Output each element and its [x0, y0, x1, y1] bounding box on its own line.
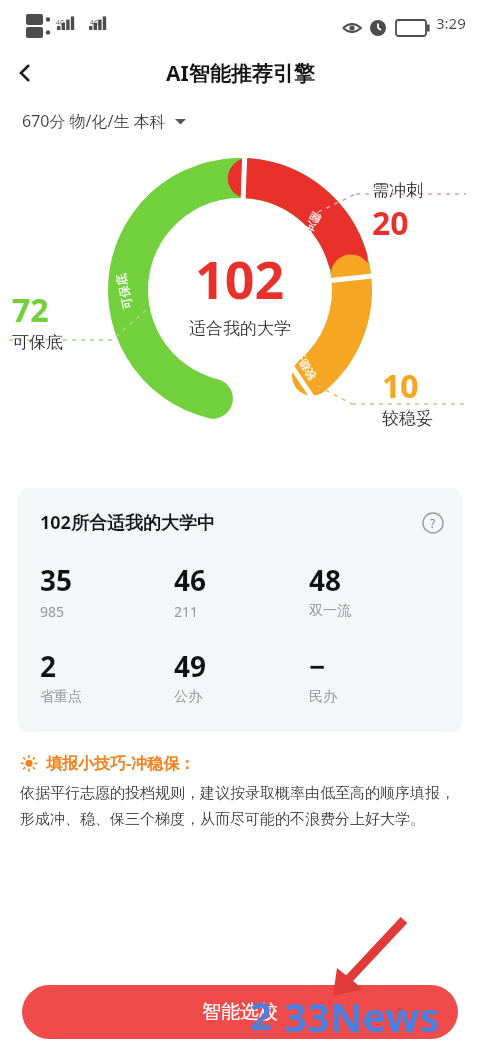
button[interactable]: 670分 物/化/生 本科: [22, 110, 186, 132]
staticText: 公办: [174, 688, 202, 706]
staticText: 民办: [309, 688, 337, 706]
staticText: 需冲刺: [297, 209, 324, 245]
staticText: 较稳妥: [290, 347, 319, 383]
staticText: 49: [174, 647, 207, 685]
staticText: 可保底: [113, 272, 135, 311]
staticText: −: [309, 647, 326, 685]
staticText: ?: [430, 515, 436, 531]
staticText: 102所合适我的大学中: [40, 510, 422, 535]
staticText: 10: [382, 364, 419, 408]
button[interactable]: Help: [422, 512, 444, 534]
staticText: 较稳妥: [382, 408, 433, 429]
staticText: 2: [40, 647, 57, 685]
staticText: 35: [40, 561, 73, 599]
staticText: 需冲刺: [372, 180, 423, 201]
staticText: 33News: [284, 989, 440, 1043]
staticText: 20: [372, 201, 409, 245]
button[interactable]: 智能选校: [22, 985, 458, 1039]
staticText: 适合我的大学: [189, 318, 291, 339]
button[interactable]: Back: [0, 48, 50, 98]
staticText: 670分 物/化/生 本科: [22, 110, 166, 132]
staticText: 智能选校: [202, 1000, 278, 1024]
staticText: 985: [40, 602, 65, 621]
staticText: 可保底: [12, 332, 63, 353]
staticText: 填报小技巧-冲稳保：: [46, 752, 196, 774]
staticText: 双一流: [309, 602, 351, 620]
staticText: 4G: [90, 18, 100, 28]
staticText: 48: [309, 561, 342, 599]
staticText: 4G: [56, 18, 66, 28]
staticText: AI智能推荐引擎: [166, 59, 315, 88]
staticText: 211: [174, 602, 199, 621]
staticText: 46: [174, 561, 207, 599]
staticText: 3:29: [436, 13, 466, 33]
staticText: 依据平行志愿的投档规则，建议按录取概率由低至高的顺序填报，形成冲、稳、保三个梯度…: [20, 784, 460, 828]
staticText: 2: [250, 989, 272, 1041]
staticText: 72: [12, 288, 49, 332]
staticText: 省重点: [40, 688, 82, 706]
staticText: 102: [195, 243, 285, 314]
